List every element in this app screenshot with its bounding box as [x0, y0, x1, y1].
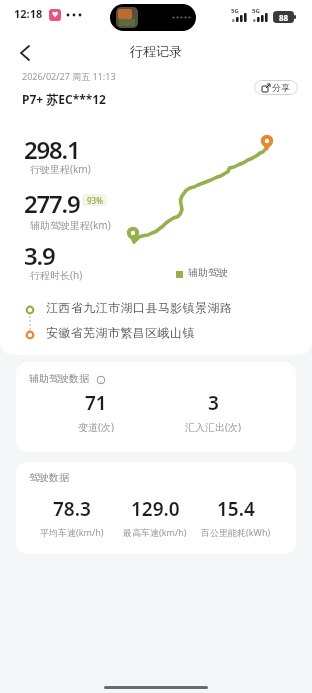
staticText: 298.1 [24, 133, 80, 166]
staticText: 江西省九江市湖口县马影镇景湖路 [46, 300, 232, 315]
staticText: 277.9 [24, 187, 80, 220]
staticText: 驾驶数据 [29, 471, 69, 484]
button[interactable]: 3 [153, 390, 273, 432]
staticText: 3 [208, 390, 219, 416]
staticText: 行程记录 [130, 43, 182, 59]
button[interactable] [16, 462, 296, 554]
staticText: 辅助驾驶数据 [29, 372, 89, 385]
staticText: 安徽省芜湖市繁昌区峨山镇 [46, 325, 195, 340]
staticText: 5G [231, 7, 239, 15]
staticText: 辅助驾驶 [188, 266, 228, 279]
staticText: 汇入汇出(次) [185, 420, 241, 432]
staticText: 129.0 [131, 496, 180, 522]
staticText: 71 [85, 390, 107, 416]
staticText: 最高车速(km/h) [123, 526, 187, 538]
staticText: 百公里能耗(kWh) [201, 526, 271, 538]
button[interactable]: 71 [36, 390, 156, 432]
staticText: 辅助驾驶里程(km) [30, 218, 111, 232]
staticText: 变道(次) [78, 420, 114, 432]
staticText: 行程时长(h) [30, 268, 83, 282]
staticText: 3.9 [24, 239, 55, 272]
staticText: 12:18 [14, 6, 43, 21]
staticText: P7+ 苏EC***12 [22, 91, 106, 107]
staticText: 平均车速(km/h) [40, 526, 104, 538]
button[interactable]: 129.0 [115, 496, 195, 540]
button[interactable] [16, 362, 296, 452]
button[interactable]: 78.3 [32, 496, 112, 540]
staticText: 93% [87, 195, 103, 206]
staticText: 78.3 [53, 496, 91, 522]
staticText: 2026/02/27 周五 11:13 [22, 70, 116, 82]
staticText: 88 [279, 12, 289, 23]
staticText: 15.4 [217, 496, 255, 522]
staticText: 行驶里程(km) [30, 162, 91, 176]
staticText: ♥ [52, 11, 59, 19]
button[interactable]: 15.4 [196, 496, 276, 540]
button[interactable] [12, 40, 38, 66]
staticText: 分享 [272, 82, 290, 93]
button[interactable]: 分享 [254, 80, 298, 95]
staticText: 5G [252, 7, 260, 15]
